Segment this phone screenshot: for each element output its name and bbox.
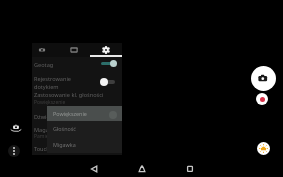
button[interactable]: Switch camera — [9, 121, 23, 135]
button[interactable] — [32, 108, 122, 122]
staticText: Dźwięk — [34, 113, 53, 121]
button[interactable]: Geotag toggle — [99, 58, 121, 70]
button[interactable]: Recent apps — [179, 157, 201, 177]
staticText: Zastosowanie kl. głośności — [34, 91, 104, 99]
button[interactable]: Touch capture toggle — [99, 76, 121, 88]
button[interactable]: Photo mode — [32, 43, 62, 57]
button[interactable]: Głośność — [47, 121, 122, 137]
button[interactable]: More options — [8, 145, 20, 157]
staticText: Rejestrowanie — [34, 75, 71, 83]
staticText: Migawka — [53, 141, 76, 148]
button[interactable]: Video mode — [62, 43, 92, 57]
button[interactable] — [32, 123, 122, 141]
staticText: Pamięć — [34, 133, 52, 140]
button[interactable]: Back — [83, 157, 105, 177]
button[interactable] — [32, 90, 122, 106]
button[interactable]: Settings — [92, 43, 122, 57]
staticText: Magazyn — [34, 126, 58, 134]
button[interactable]: Record video — [256, 93, 268, 105]
staticText: Geotag — [34, 61, 54, 69]
button[interactable] — [32, 142, 122, 155]
button[interactable]: Powiększenie — [47, 106, 122, 122]
button[interactable] — [32, 72, 122, 92]
staticText: Touch — [34, 145, 50, 153]
staticText: Głośność — [53, 125, 76, 132]
button[interactable]: Home — [131, 157, 153, 177]
staticText: Powiększenie — [34, 99, 66, 106]
staticText: Powiększenie — [53, 110, 87, 117]
button[interactable]: Migawka — [47, 137, 122, 153]
staticText: dotykiem — [34, 83, 59, 91]
button[interactable]: Take photo — [251, 66, 276, 91]
button[interactable] — [32, 58, 122, 72]
button[interactable]: Open gallery — [257, 142, 270, 155]
